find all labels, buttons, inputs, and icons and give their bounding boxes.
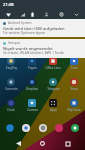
- button[interactable]: Telegram: [43, 78, 63, 91]
- staticText: Gerät wird über USB aufgeladen: [3, 26, 65, 31]
- button[interactable]: Store: [64, 78, 84, 91]
- button[interactable]: Evernote: [1, 78, 21, 91]
- staticText: Android System: [8, 21, 32, 25]
- staticText: Camera: [27, 108, 38, 112]
- staticText: Telegram: [47, 87, 60, 91]
- staticText: Nigelt wurde angewendet: [3, 46, 53, 51]
- button[interactable]: Camera: [22, 99, 42, 112]
- button[interactable]: Lens: [64, 57, 84, 70]
- button[interactable]: Wi-Fi: [4, 10, 12, 18]
- staticText: Apps: [50, 108, 57, 112]
- button[interactable]: Chrome: [20, 122, 32, 134]
- staticText: Clock: [7, 108, 15, 112]
- button[interactable]: Battery: [28, 10, 36, 18]
- staticText: Office Lens: [45, 66, 61, 70]
- staticText: Store: [70, 87, 78, 91]
- button[interactable]: Recents: [61, 137, 74, 150]
- button[interactable]: EasyPay: [1, 57, 21, 70]
- staticText: Paytm: [28, 66, 37, 70]
- button[interactable]: Photos: [53, 122, 65, 134]
- button[interactable]: Messages: [37, 122, 49, 134]
- button[interactable]: Clock: [1, 99, 21, 112]
- button[interactable]: Hotspot: [0, 39, 85, 58]
- staticText: Dropbox: [26, 87, 38, 91]
- staticText: Für weitere Optionen tippen: [3, 31, 46, 35]
- button[interactable]: Phone: [4, 122, 16, 134]
- button[interactable]: Apps: [43, 99, 63, 112]
- button[interactable]: User: [42, 10, 50, 18]
- button[interactable]: Android System: [0, 19, 85, 37]
- button[interactable]: Home: [36, 137, 49, 150]
- button[interactable]: Expand: [72, 10, 80, 18]
- button[interactable]: Paytm: [22, 57, 42, 70]
- button[interactable]: Play Store: [64, 99, 84, 112]
- button[interactable]: Signal: [18, 10, 26, 18]
- button[interactable]: Settings: [57, 10, 65, 18]
- staticText: EasyPay: [6, 66, 17, 70]
- staticText: Play Store: [67, 108, 81, 112]
- staticText: Lens: [71, 66, 78, 70]
- staticText: Vo erlaubt, WLAN blockiert, AWS 1 Sende: [3, 51, 65, 55]
- button[interactable]: Back: [12, 137, 25, 150]
- staticText: Evernote: [5, 87, 18, 91]
- staticText: 21:08: [3, 2, 14, 8]
- button[interactable]: WhatsApp: [69, 122, 81, 134]
- button[interactable]: Dropbox: [22, 78, 42, 91]
- staticText: Hotspot: [8, 41, 21, 45]
- button[interactable]: Office Lens: [43, 57, 63, 70]
